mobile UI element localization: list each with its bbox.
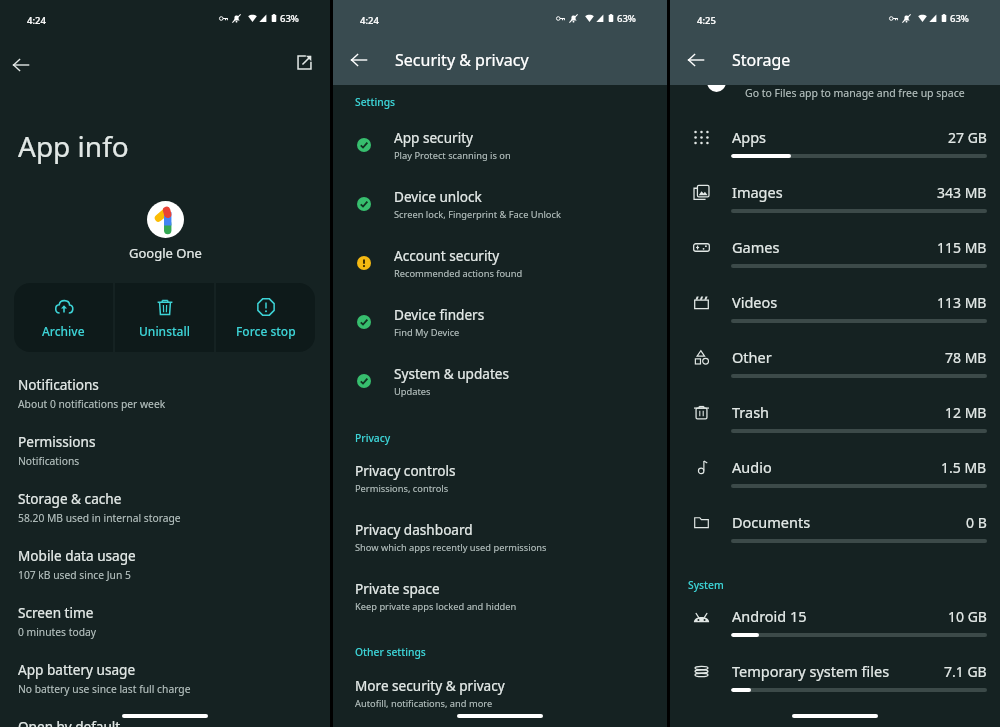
staticText: App battery usage bbox=[18, 660, 136, 679]
button[interactable]: Private space bbox=[333, 566, 667, 625]
staticText: 115 MB bbox=[937, 238, 987, 257]
staticText: Audio bbox=[732, 457, 941, 477]
button[interactable]: Permissions bbox=[0, 426, 330, 483]
staticText: Apps bbox=[732, 127, 948, 147]
staticText: No battery use since last full charge bbox=[18, 682, 191, 696]
staticText: Privacy bbox=[355, 431, 391, 445]
button[interactable]: Force stop bbox=[216, 283, 315, 352]
staticText: Trash bbox=[732, 402, 945, 422]
button[interactable]: Back bbox=[686, 50, 706, 70]
button[interactable]: Uninstall bbox=[115, 283, 214, 352]
staticText: Force stop bbox=[236, 323, 296, 339]
button[interactable]: Temporary system files bbox=[670, 654, 1000, 709]
button[interactable]: Open in new bbox=[296, 54, 313, 71]
button[interactable]: System & updates bbox=[333, 351, 667, 410]
staticText: Google One bbox=[129, 244, 202, 262]
staticText: Notifications bbox=[18, 454, 80, 468]
button[interactable]: Screen time bbox=[0, 597, 330, 654]
button[interactable]: Privacy dashboard bbox=[333, 507, 667, 566]
staticText: 7.1 GB bbox=[944, 662, 987, 681]
staticText: Keep private apps locked and hidden bbox=[355, 600, 517, 613]
staticText: App info bbox=[18, 127, 129, 165]
staticText: Find My Device bbox=[394, 326, 460, 339]
staticText: Videos bbox=[732, 292, 937, 312]
button[interactable]: Open by default bbox=[0, 711, 330, 727]
button[interactable]: Device finders bbox=[333, 292, 667, 351]
staticText: Device unlock bbox=[394, 187, 482, 206]
staticText: Recommended actions found bbox=[394, 267, 523, 280]
staticText: Autofill, notifications, and more bbox=[355, 697, 493, 710]
staticText: Screen time bbox=[18, 603, 94, 622]
staticText: Storage & cache bbox=[18, 489, 122, 508]
staticText: 0 B bbox=[966, 513, 987, 532]
staticText: Archive bbox=[42, 323, 85, 339]
button[interactable]: Storage & cache bbox=[0, 483, 330, 540]
staticText: 1.5 MB bbox=[941, 458, 987, 477]
staticText: Open by default bbox=[18, 717, 121, 727]
staticText: System & updates bbox=[394, 364, 510, 383]
staticText: 343 MB bbox=[937, 183, 987, 202]
button[interactable]: Back bbox=[11, 55, 31, 75]
button[interactable]: Archive bbox=[14, 283, 113, 352]
staticText: Other bbox=[732, 347, 945, 367]
button[interactable]: Games bbox=[670, 230, 1000, 285]
staticText: Updates bbox=[394, 385, 431, 398]
staticText: 0 minutes today bbox=[18, 625, 97, 639]
staticText: Play Protect scanning is on bbox=[394, 149, 511, 162]
staticText: 27 GB bbox=[948, 128, 987, 147]
staticText: Device finders bbox=[394, 305, 485, 324]
staticText: 63% bbox=[617, 12, 636, 25]
staticText: Screen lock, Fingerprint & Face Unlock bbox=[394, 208, 561, 221]
button[interactable]: Device unlock bbox=[333, 174, 667, 233]
staticText: 63% bbox=[280, 12, 299, 25]
button[interactable]: Account security bbox=[333, 233, 667, 292]
staticText: Account security bbox=[394, 246, 500, 265]
staticText: About 0 notifications per week bbox=[18, 397, 166, 411]
button[interactable]: Audio bbox=[670, 450, 1000, 505]
staticText: Private space bbox=[355, 579, 440, 598]
button[interactable]: Apps bbox=[670, 120, 1000, 175]
button[interactable]: Trash bbox=[670, 395, 1000, 450]
staticText: Notifications bbox=[18, 375, 99, 394]
staticText: 4:24 bbox=[360, 14, 379, 27]
staticText: More security & privacy bbox=[355, 676, 505, 695]
staticText: Permissions, controls bbox=[355, 482, 449, 495]
button[interactable]: Videos bbox=[670, 285, 1000, 340]
staticText: Mobile data usage bbox=[18, 546, 136, 565]
button[interactable]: More security & privacy bbox=[333, 663, 667, 722]
staticText: 4:24 bbox=[27, 14, 46, 27]
button[interactable]: Notifications bbox=[0, 369, 330, 426]
staticText: Privacy controls bbox=[355, 461, 456, 480]
staticText: 113 MB bbox=[937, 293, 987, 312]
button[interactable]: App battery usage bbox=[0, 654, 330, 711]
staticText: Go to Files app to manage and free up sp… bbox=[745, 86, 965, 100]
button[interactable]: Back bbox=[349, 50, 369, 70]
staticText: Temporary system files bbox=[732, 661, 944, 681]
staticText: Settings bbox=[355, 95, 396, 109]
button[interactable]: Mobile data usage bbox=[0, 540, 330, 597]
button[interactable]: Other bbox=[670, 340, 1000, 395]
staticText: Documents bbox=[732, 512, 966, 532]
button[interactable]: App security bbox=[333, 115, 667, 174]
staticText: Android 15 bbox=[732, 606, 948, 626]
staticText: System bbox=[688, 578, 724, 592]
staticText: Privacy dashboard bbox=[355, 520, 473, 539]
button[interactable]: Android 15 bbox=[670, 599, 1000, 654]
staticText: Storage bbox=[732, 49, 791, 71]
staticText: App security bbox=[394, 128, 474, 147]
staticText: 10 GB bbox=[948, 607, 987, 626]
staticText: Show which apps recently used permission… bbox=[355, 541, 547, 554]
staticText: Images bbox=[732, 182, 937, 202]
staticText: 4:25 bbox=[697, 14, 716, 27]
staticText: 78 MB bbox=[945, 348, 987, 367]
staticText: 107 kB used since Jun 5 bbox=[18, 568, 131, 582]
staticText: 63% bbox=[950, 12, 969, 25]
button[interactable]: Privacy controls bbox=[333, 448, 667, 507]
button[interactable]: Documents bbox=[670, 505, 1000, 560]
staticText: Permissions bbox=[18, 432, 96, 451]
staticText: Games bbox=[732, 237, 937, 257]
staticText: 12 MB bbox=[945, 403, 987, 422]
staticText: Uninstall bbox=[139, 323, 190, 339]
button[interactable]: Images bbox=[670, 175, 1000, 230]
staticText: Security & privacy bbox=[395, 49, 529, 71]
